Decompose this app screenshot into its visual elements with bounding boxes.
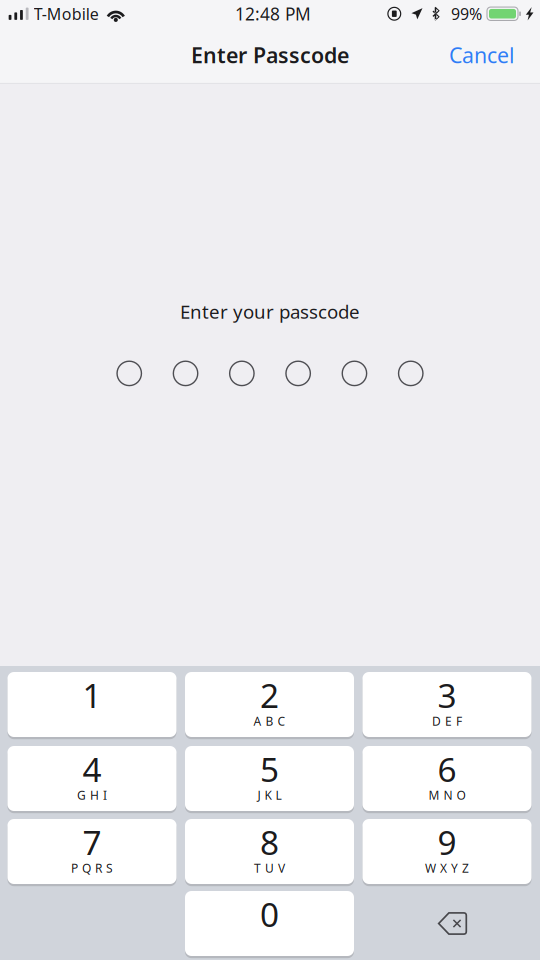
staticText: 4 bbox=[82, 747, 101, 791]
staticText: P Q R S bbox=[71, 860, 113, 876]
staticText: G H I bbox=[77, 787, 107, 803]
staticText: Cancel bbox=[449, 41, 515, 69]
staticText: 7 bbox=[82, 820, 101, 864]
button[interactable]: 2 bbox=[185, 672, 354, 737]
staticText: 8 bbox=[260, 820, 279, 864]
button[interactable]: 4 bbox=[7, 746, 176, 811]
staticText: W X Y Z bbox=[425, 860, 469, 876]
button[interactable]: Delete bbox=[362, 891, 531, 956]
staticText: T-Mobile bbox=[34, 3, 99, 24]
button[interactable]: Cancel bbox=[436, 31, 528, 79]
button[interactable]: 7 bbox=[7, 819, 176, 884]
staticText: 2 bbox=[260, 673, 279, 717]
staticText: A B C bbox=[253, 713, 285, 729]
button[interactable]: 8 bbox=[185, 819, 354, 884]
staticText: T U V bbox=[254, 860, 285, 876]
staticText: 3 bbox=[437, 673, 456, 717]
staticText: 5 bbox=[260, 747, 279, 791]
button[interactable]: 9 bbox=[362, 819, 531, 884]
staticText: Enter Passcode bbox=[191, 41, 349, 69]
button[interactable]: 5 bbox=[185, 746, 354, 811]
button[interactable]: 3 bbox=[362, 672, 531, 737]
button[interactable]: 6 bbox=[362, 746, 531, 811]
staticText: 99% bbox=[451, 3, 482, 24]
staticText: M N O bbox=[428, 787, 465, 803]
staticText: Enter your passcode bbox=[180, 299, 360, 324]
button[interactable]: 1 bbox=[7, 672, 176, 737]
staticText: 12:48 PM bbox=[235, 2, 311, 25]
staticText: D E F bbox=[432, 713, 462, 729]
staticText: J K L bbox=[257, 787, 281, 803]
staticText: 1 bbox=[82, 673, 101, 717]
staticText: 6 bbox=[437, 747, 456, 791]
staticText: 9 bbox=[437, 820, 456, 864]
staticText: 0 bbox=[260, 892, 279, 936]
button[interactable]: 0 bbox=[185, 891, 354, 956]
